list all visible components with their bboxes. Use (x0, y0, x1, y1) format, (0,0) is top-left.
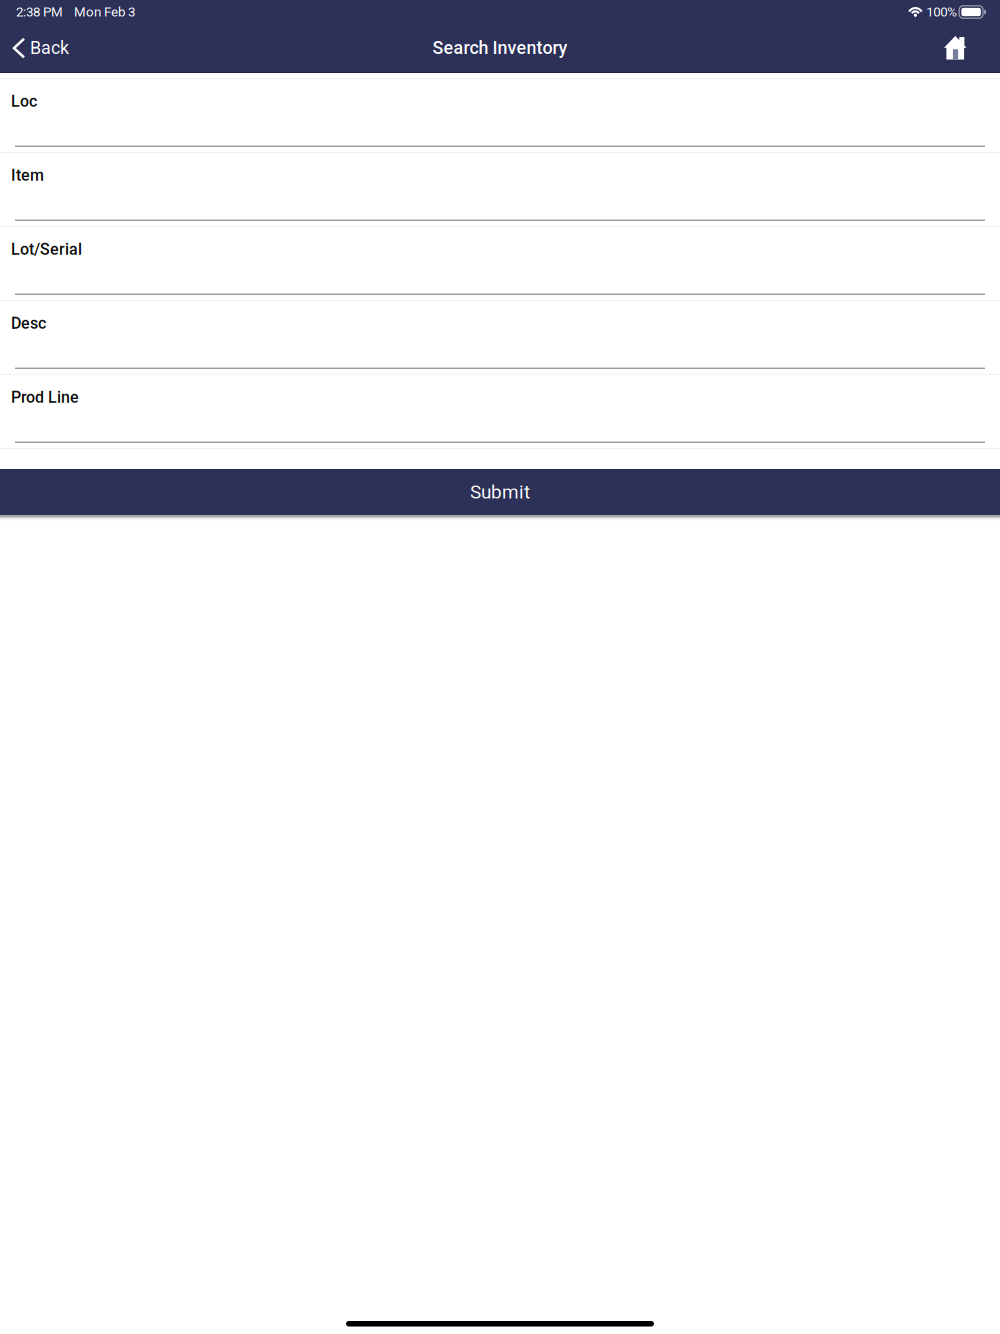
staticText: Back (30, 37, 69, 58)
staticText: Search Inventory (432, 37, 567, 58)
staticText: Lot/Serial (11, 240, 82, 259)
button[interactable]: Item (0, 153, 1000, 226)
button[interactable]: Submit (0, 469, 1000, 515)
staticText: Item (11, 166, 44, 185)
staticText: Prod Line (11, 388, 79, 407)
staticText: Desc (11, 314, 46, 333)
button[interactable]: Desc (0, 301, 1000, 374)
button[interactable]: Lot/Serial (0, 227, 1000, 300)
button[interactable]: Home (932, 24, 1000, 72)
staticText: Submit (470, 481, 530, 503)
button[interactable]: Prod Line (0, 375, 1000, 448)
button[interactable]: Loc (0, 79, 1000, 152)
staticText: Mon Feb 3 (74, 4, 135, 20)
button[interactable]: Back (0, 24, 79, 72)
staticText: 2:38 PM (16, 4, 63, 20)
staticText: 100% (926, 4, 957, 20)
staticText: Loc (11, 92, 37, 111)
